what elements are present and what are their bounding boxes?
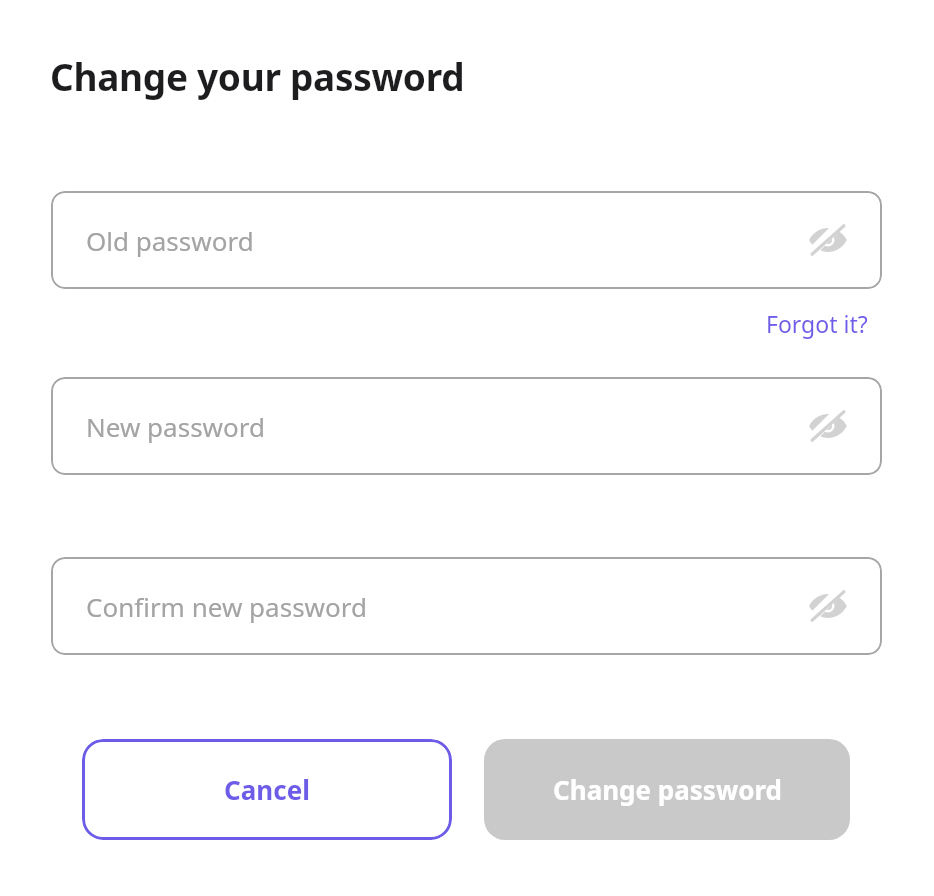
button[interactable]: Cancel bbox=[82, 739, 452, 840]
staticText: Cancel bbox=[224, 772, 310, 807]
staticText: Old password bbox=[86, 223, 254, 258]
staticText: Change password bbox=[553, 772, 782, 807]
staticText: New password bbox=[86, 409, 265, 444]
button[interactable]: Forgot it? bbox=[756, 306, 886, 344]
button[interactable]: Change password bbox=[484, 739, 850, 840]
button[interactable]: New password bbox=[51, 377, 882, 475]
button[interactable]: Confirm new password bbox=[51, 557, 882, 655]
staticText: Forgot it? bbox=[766, 308, 868, 339]
staticText: Confirm new password bbox=[86, 589, 367, 624]
button[interactable]: Show password bbox=[804, 402, 852, 450]
button[interactable]: Old password bbox=[51, 191, 882, 289]
button[interactable]: Show password bbox=[804, 582, 852, 630]
staticText: Change your password bbox=[50, 51, 465, 101]
button[interactable]: Show password bbox=[804, 216, 852, 264]
